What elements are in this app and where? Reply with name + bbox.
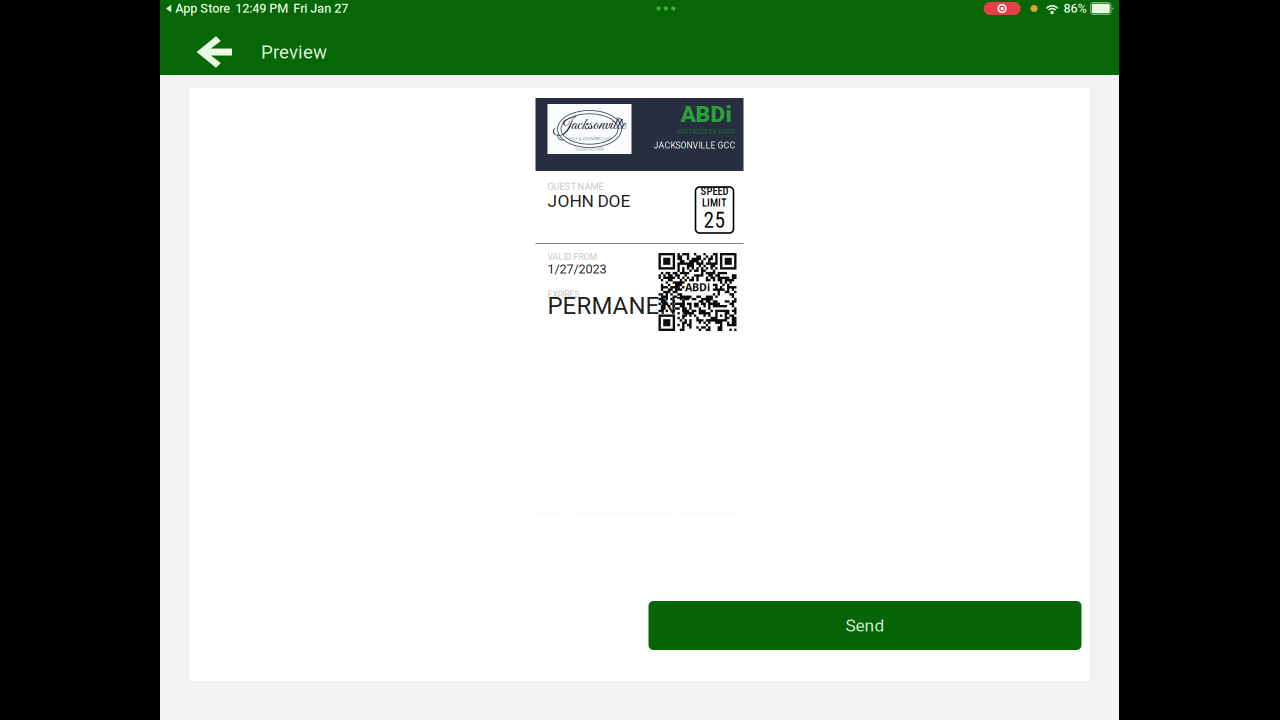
staticText: SPEED [700, 185, 728, 197]
staticText: JACKSONVILLE GCC [653, 140, 735, 151]
button[interactable]: Send [648, 601, 1081, 650]
staticText: GUEST NAME [547, 181, 603, 192]
staticText: JOHN DOE [547, 191, 630, 211]
staticText: VALID FROM [547, 252, 597, 262]
staticText: Preview [261, 41, 327, 63]
staticText: 12:49 PM [235, 1, 288, 16]
button[interactable]: Back [160, 17, 261, 75]
staticText: GOLF & COUNTRY CLUB [567, 136, 611, 141]
staticText: Send [845, 615, 884, 636]
staticText: EXPIRES [547, 289, 579, 300]
staticText: 25 [703, 208, 725, 233]
staticText: FASTACCESS PASS [677, 128, 734, 135]
staticText: LIMIT [702, 196, 727, 209]
staticText: ABDi [680, 101, 731, 128]
staticText: ABDi [685, 280, 710, 294]
staticText: 1/27/2023 [547, 262, 606, 276]
staticText: Fri Jan 27 [293, 1, 348, 16]
staticText: App Store [175, 1, 230, 16]
staticText: PERMANENT [547, 292, 690, 320]
staticText: Jacksonville [554, 114, 625, 136]
staticText: Established 1896 [575, 146, 603, 152]
staticText: 86% [1064, 1, 1087, 16]
